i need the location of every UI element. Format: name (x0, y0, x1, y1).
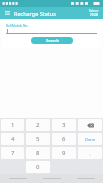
button[interactable]: 4 (1, 133, 24, 145)
staticText: 1 (11, 121, 15, 129)
button[interactable]: Back (0, 174, 35, 183)
staticText: Ref/Mobile No. (6, 24, 29, 28)
staticText: Done (85, 137, 96, 142)
button[interactable]: Recents (69, 174, 103, 183)
button[interactable]: 9 (52, 147, 76, 159)
staticText: 2 (36, 121, 40, 129)
staticText: Recharge Status (14, 10, 56, 17)
staticText: 7 (11, 149, 15, 157)
button[interactable]: 8 (26, 147, 50, 159)
staticText: 5 (36, 135, 40, 143)
button[interactable] (6, 29, 97, 34)
staticText: 4 (11, 135, 15, 143)
staticText: 8 (36, 149, 40, 157)
staticText: 3 (62, 121, 66, 129)
staticText: 9 (62, 149, 66, 157)
staticText: 0 (36, 163, 40, 171)
button[interactable]: Backspace (78, 119, 102, 131)
button[interactable]: 1 (1, 119, 24, 131)
button[interactable]: Search (31, 37, 73, 44)
button[interactable]: Home (35, 174, 69, 183)
button[interactable]: 6 (52, 133, 76, 145)
button[interactable]: Account balance (88, 9, 100, 17)
button[interactable]: 0 (26, 161, 50, 173)
staticText: ., (89, 151, 91, 156)
button[interactable]: 7 (1, 147, 24, 159)
staticText: ₹0.00 (90, 13, 99, 17)
button[interactable]: 3 (52, 119, 76, 131)
button[interactable]: 5 (26, 133, 50, 145)
staticText: 6 (62, 135, 66, 143)
button[interactable]: 2 (26, 119, 50, 131)
staticText: Search (46, 38, 59, 43)
button[interactable]: Open navigation menu (3, 9, 11, 17)
button[interactable]: Done (78, 133, 102, 145)
staticText: Balance (89, 9, 99, 13)
